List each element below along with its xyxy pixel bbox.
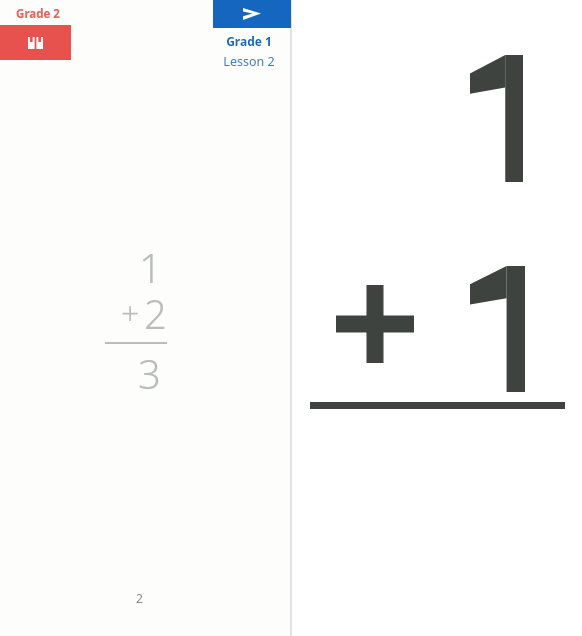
button[interactable]: Grade 2 book (0, 25, 71, 60)
staticText: Grade 1 (226, 33, 272, 49)
staticText: 2 (136, 590, 143, 606)
staticText: + (121, 291, 140, 335)
staticText: 3 (138, 346, 161, 400)
button[interactable]: Grade 2 (10, 5, 66, 23)
staticText: Lesson 2 (223, 53, 275, 70)
staticText: 2 (144, 286, 167, 340)
button[interactable]: Grade 1 (206, 33, 291, 70)
staticText: 1 (139, 240, 162, 294)
staticText: Grade 2 (16, 6, 60, 22)
button[interactable]: Lesson flag (213, 0, 291, 28)
